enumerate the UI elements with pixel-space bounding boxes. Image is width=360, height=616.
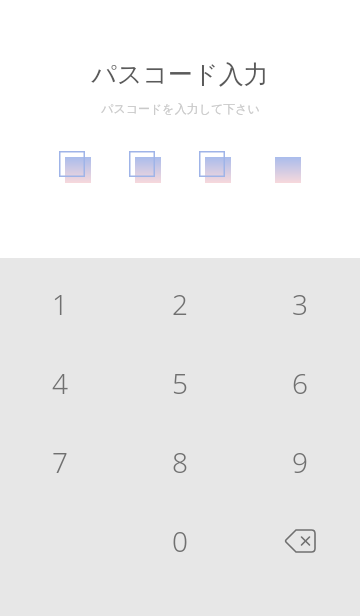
button[interactable]: 2	[120, 264, 240, 343]
button[interactable]: 4	[0, 343, 120, 422]
button[interactable]: 5	[120, 343, 240, 422]
button[interactable]: 8	[120, 422, 240, 501]
staticText: 7	[52, 443, 68, 481]
button[interactable]: 1	[0, 264, 120, 343]
staticText: パスコード入力	[91, 59, 269, 90]
staticText: 1	[52, 285, 68, 323]
button[interactable]: Delete	[240, 501, 360, 580]
button[interactable]: 0	[120, 501, 240, 580]
staticText: パスコードを入力して下さい	[101, 101, 260, 116]
staticText: 4	[52, 364, 68, 402]
button[interactable]: 7	[0, 422, 120, 501]
staticText: 5	[172, 364, 188, 402]
staticText: 3	[292, 285, 308, 323]
staticText: 8	[172, 443, 188, 481]
staticText: 6	[292, 364, 308, 402]
button[interactable]: 6	[240, 343, 360, 422]
button[interactable]: 3	[240, 264, 360, 343]
staticText: 9	[292, 443, 308, 481]
staticText: 2	[172, 285, 188, 323]
staticText: 0	[172, 522, 188, 560]
button[interactable]: 9	[240, 422, 360, 501]
